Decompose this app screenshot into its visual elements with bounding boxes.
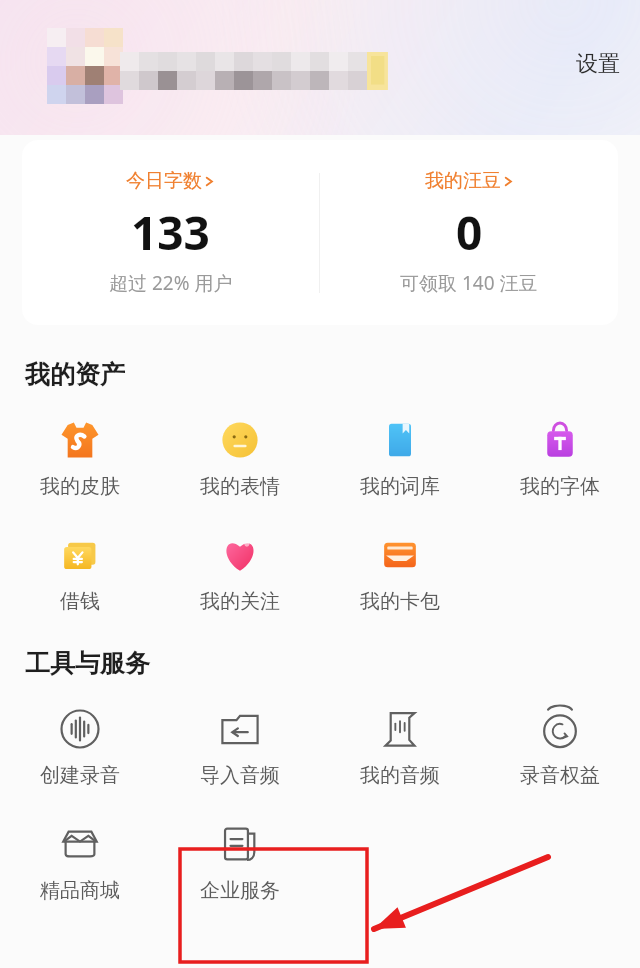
staticText: 精品商城: [40, 878, 120, 903]
staticText: 设置: [576, 50, 620, 78]
staticText: 我的关注: [200, 589, 280, 614]
button[interactable]: 导入音频: [160, 701, 320, 794]
staticText: 工具与服务: [25, 648, 150, 679]
button[interactable]: 我的关注: [160, 527, 320, 620]
staticText: 借钱: [60, 589, 100, 614]
button[interactable]: 企业服务: [160, 816, 320, 909]
staticText: 超过 22% 用户: [109, 270, 233, 296]
staticText: 我的汪豆: [425, 169, 501, 193]
button[interactable]: 精品商城: [0, 816, 160, 909]
staticText: 我的卡包: [360, 589, 440, 614]
button[interactable]: 今日字数: [22, 140, 319, 325]
button[interactable]: 我的词库: [320, 412, 480, 505]
button[interactable]: 设置: [556, 44, 640, 84]
staticText: 今日字数: [126, 169, 202, 193]
staticText: 我的皮肤: [40, 474, 120, 499]
staticText: 我的音频: [360, 763, 440, 788]
staticText: 录音权益: [520, 763, 600, 788]
staticText: 导入音频: [200, 763, 280, 788]
button[interactable]: 我的音频: [320, 701, 480, 794]
staticText: 企业服务: [200, 878, 280, 903]
button[interactable]: 我的卡包: [320, 527, 480, 620]
button[interactable]: 我的表情: [160, 412, 320, 505]
button[interactable]: 我的汪豆: [320, 140, 618, 325]
staticText: 我的字体: [520, 474, 600, 499]
staticText: 我的词库: [360, 474, 440, 499]
staticText: 我的资产: [25, 359, 125, 390]
staticText: 可领取 140 汪豆: [400, 270, 538, 296]
staticText: 我的表情: [200, 474, 280, 499]
staticText: 创建录音: [40, 763, 120, 788]
staticText: 0: [456, 201, 483, 264]
staticText: 133: [131, 201, 210, 264]
button[interactable]: 我的字体: [480, 412, 640, 505]
button[interactable]: 借钱: [0, 527, 160, 620]
button[interactable]: 创建录音: [0, 701, 160, 794]
other: Profile: [22, 18, 367, 103]
button[interactable]: 我的皮肤: [0, 412, 160, 505]
button[interactable]: 录音权益: [480, 701, 640, 794]
